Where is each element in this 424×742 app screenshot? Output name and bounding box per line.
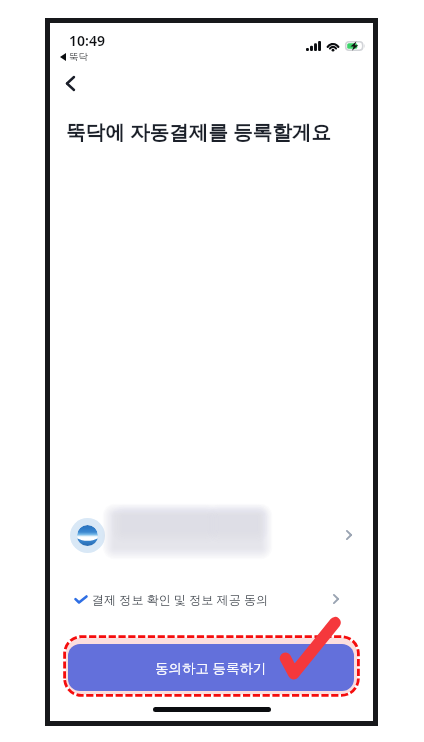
staticText: 뚝닥 <box>69 51 88 63</box>
staticText: 동의하고 등록하기 <box>155 659 267 677</box>
button[interactable]: 결제 정보 확인 및 정보 제공 동의 <box>50 575 373 615</box>
button[interactable] <box>62 509 385 563</box>
button[interactable]: 동의하고 등록하기 <box>68 644 354 691</box>
staticText: 결제 정보 확인 및 정보 제공 동의 <box>92 591 269 608</box>
staticText: 뚝닥에 자동결제를 등록할게요 <box>66 118 331 145</box>
button[interactable]: Back <box>50 63 90 103</box>
staticText: 10:49 <box>69 31 105 50</box>
